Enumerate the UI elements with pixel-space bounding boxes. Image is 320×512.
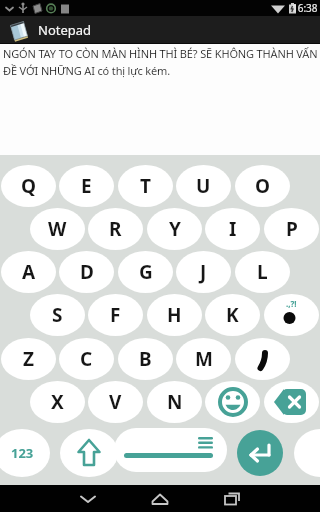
button[interactable]: O xyxy=(235,165,290,207)
button[interactable]: Y xyxy=(147,208,202,250)
button[interactable] xyxy=(212,485,252,512)
staticText: R xyxy=(109,216,122,242)
staticText: P xyxy=(286,216,298,242)
staticText: 123 xyxy=(11,444,34,462)
button[interactable]: X xyxy=(30,381,85,423)
staticText: L xyxy=(257,259,268,285)
staticText: .,?! xyxy=(286,298,297,309)
button[interactable]: B xyxy=(118,338,173,380)
button[interactable]: M xyxy=(176,338,231,380)
staticText: O xyxy=(255,173,271,199)
button[interactable]: D xyxy=(59,251,114,293)
staticText: W xyxy=(48,216,67,242)
staticText: V xyxy=(109,389,122,415)
button[interactable]: P xyxy=(264,208,319,250)
staticText: F xyxy=(110,302,121,328)
staticText: C xyxy=(80,346,93,372)
staticText: U xyxy=(196,173,211,199)
button[interactable] xyxy=(237,430,283,476)
button[interactable] xyxy=(205,381,260,423)
button[interactable] xyxy=(114,428,227,472)
button[interactable]: J xyxy=(176,251,231,293)
button[interactable]: K xyxy=(205,294,260,336)
button[interactable]: E xyxy=(59,165,114,207)
staticText: Y xyxy=(169,216,181,242)
button[interactable]: V xyxy=(88,381,143,423)
staticText: N xyxy=(167,389,183,415)
staticText: G xyxy=(139,259,153,285)
staticText: A xyxy=(22,259,36,285)
button[interactable]: W xyxy=(30,208,85,250)
staticText: S xyxy=(52,302,63,328)
button[interactable]: .,?! xyxy=(264,294,319,336)
button[interactable]: L xyxy=(235,251,290,293)
button[interactable] xyxy=(235,338,290,380)
button[interactable]: U xyxy=(176,165,231,207)
staticText: B xyxy=(139,346,152,372)
button[interactable]: 123 xyxy=(0,429,50,477)
staticText: M xyxy=(195,346,213,372)
staticText: K xyxy=(226,302,239,328)
staticText: 16:38 xyxy=(292,1,318,15)
button[interactable]: F xyxy=(88,294,143,336)
button[interactable]: C xyxy=(59,338,114,380)
button[interactable]: R xyxy=(88,208,143,250)
button[interactable]: Z xyxy=(1,338,56,380)
staticText: Notepad xyxy=(38,21,92,39)
staticText: X xyxy=(51,389,64,415)
staticText: Q xyxy=(21,173,37,199)
staticText: ĐỀ VỚI NHỮNG AI có thị lực kém. xyxy=(3,63,171,78)
staticText: I xyxy=(229,216,237,242)
button[interactable]: H xyxy=(147,294,202,336)
staticText: T xyxy=(140,173,151,199)
button[interactable] xyxy=(60,429,118,477)
button[interactable]: A xyxy=(1,251,56,293)
button[interactable]: T xyxy=(118,165,173,207)
staticText: D xyxy=(80,259,94,285)
button[interactable]: Notepad xyxy=(0,16,320,44)
staticText: Z xyxy=(23,346,35,372)
button[interactable] xyxy=(68,485,108,512)
staticText: E xyxy=(81,173,92,199)
button[interactable]: Q xyxy=(1,165,56,207)
button[interactable] xyxy=(140,485,180,512)
button[interactable]: N xyxy=(147,381,202,423)
staticText: H xyxy=(167,302,182,328)
button[interactable]: G xyxy=(118,251,173,293)
button[interactable] xyxy=(264,381,319,423)
staticText: J xyxy=(200,259,207,285)
button[interactable]: I xyxy=(205,208,260,250)
button[interactable]: S xyxy=(30,294,85,336)
staticText: NGÓN TAY TO CÒN MÀN HÌNH THÌ BÉ? SẼ KHÔN… xyxy=(3,46,318,61)
